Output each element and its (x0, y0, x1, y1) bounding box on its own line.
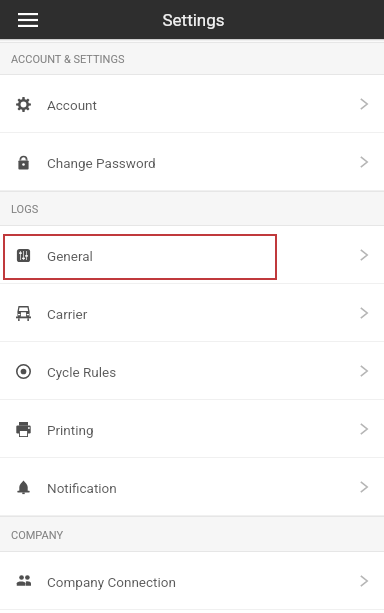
button[interactable]: Carrier (0, 284, 384, 342)
button[interactable]: Cycle Rules (0, 342, 384, 400)
staticText: ACCOUNT & SETTINGS (11, 53, 125, 66)
staticText: General (47, 248, 93, 264)
button[interactable]: Account (0, 75, 384, 133)
staticText: Cycle Rules (47, 364, 117, 380)
staticText: Notification (47, 480, 117, 496)
button[interactable]: Company Connection (0, 552, 384, 610)
staticText: Settings (162, 10, 225, 30)
staticText: Carrier (47, 306, 88, 322)
staticText: Account (47, 97, 97, 113)
staticText: Company Connection (47, 574, 176, 590)
button[interactable]: Notification (0, 458, 384, 516)
staticText: Change Password (47, 155, 156, 171)
button[interactable]: General (0, 226, 384, 284)
button[interactable]: Printing (0, 400, 384, 458)
button[interactable]: Change Password (0, 133, 384, 191)
button[interactable]: Open navigation drawer (8, 0, 48, 39)
staticText: LOGS (11, 203, 39, 216)
staticText: Printing (47, 422, 94, 438)
staticText: COMPANY (11, 529, 64, 542)
